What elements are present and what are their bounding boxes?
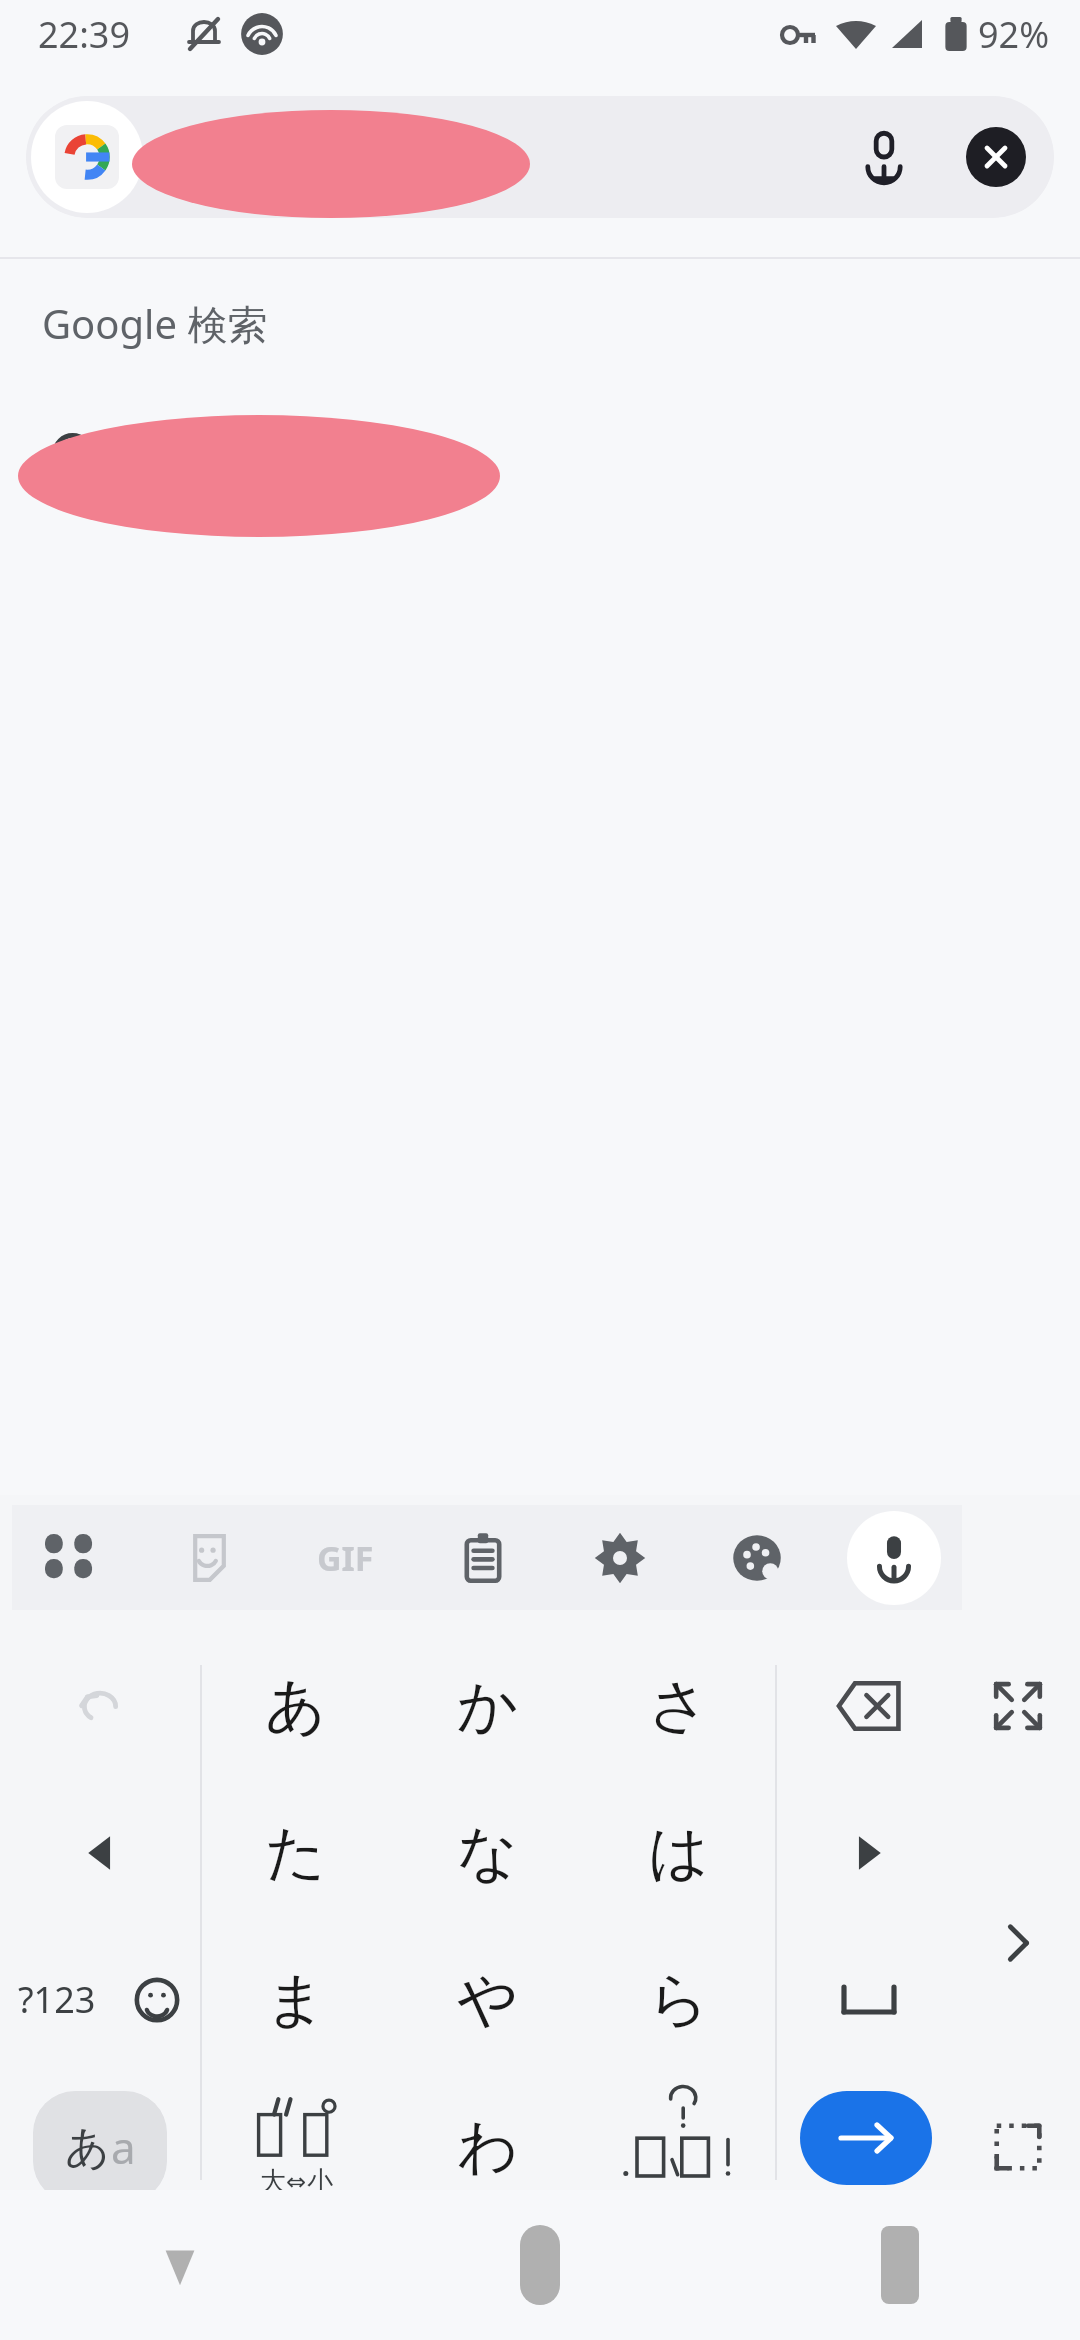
- button[interactable]: ら: [583, 1926, 775, 2073]
- button[interactable]: さ: [583, 1632, 775, 1779]
- button[interactable]: Home: [360, 2190, 720, 2340]
- staticText: な: [457, 1815, 519, 1891]
- staticText: Google 検索: [42, 296, 268, 351]
- button[interactable]: Stickers: [138, 1505, 276, 1610]
- button[interactable]: や: [392, 1926, 584, 2073]
- staticText: 小: [307, 2165, 333, 2198]
- staticText: ⇔: [286, 2168, 307, 2196]
- staticText: 鳥取蒼療整院: [201, 127, 489, 187]
- staticText: ?123: [18, 1975, 96, 2024]
- button[interactable]: Punctuation: [583, 2073, 775, 2220]
- staticText: 92%: [978, 10, 1050, 59]
- button[interactable]: あ: [200, 1632, 392, 1779]
- staticText: 22:39: [38, 10, 131, 59]
- staticText: ら: [648, 1962, 710, 2038]
- button[interactable]: Search engine: [31, 101, 143, 213]
- button[interactable]: Back: [0, 2190, 360, 2340]
- button[interactable]: GIF: [276, 1505, 414, 1610]
- staticText: あ: [265, 1668, 327, 1744]
- button[interactable]: Settings: [551, 1505, 688, 1610]
- button[interactable]: Clipboard: [414, 1505, 551, 1610]
- button[interactable]: Emoji: [114, 1926, 200, 2073]
- button[interactable]: ?123: [0, 1926, 114, 2073]
- button[interactable]: Search: [800, 2091, 932, 2185]
- button[interactable]: Switch input language: [0, 2073, 200, 2220]
- button[interactable]: か: [392, 1632, 584, 1779]
- staticText: あ: [65, 2120, 111, 2175]
- button[interactable]: More suggestions: [955, 1889, 1080, 1997]
- button[interactable]: Expand keyboard: [955, 1632, 1080, 1779]
- button[interactable]: Clear: [940, 101, 1052, 213]
- button[interactable]: Themes: [688, 1505, 825, 1610]
- button[interactable]: 鳥取蒼療整院: [0, 398, 1080, 520]
- button[interactable]: Cursor left: [0, 1779, 200, 1926]
- button[interactable]: Search engine: [26, 96, 1054, 218]
- staticText: か: [457, 1668, 519, 1744]
- staticText: は: [648, 1815, 710, 1891]
- staticText: や: [457, 1962, 519, 2038]
- button[interactable]: な: [392, 1779, 584, 1926]
- button[interactable]: Voice search: [828, 101, 940, 213]
- staticText: さ: [648, 1668, 710, 1744]
- button[interactable]: Keyboard layouts: [0, 1505, 138, 1610]
- button[interactable]: Cursor right: [783, 1779, 955, 1926]
- staticText: 大: [260, 2165, 286, 2198]
- button[interactable]: Select text: [955, 2073, 1080, 2220]
- button[interactable]: は: [583, 1779, 775, 1926]
- staticText: a: [111, 2117, 136, 2177]
- staticText: た: [265, 1815, 327, 1891]
- button[interactable]: Space: [783, 1926, 955, 2073]
- staticText: わ: [457, 2109, 519, 2185]
- button[interactable]: Dakuten and case: [200, 2073, 392, 2220]
- staticText: GIF: [317, 1535, 374, 1581]
- button[interactable]: Backspace: [783, 1632, 955, 1779]
- button[interactable]: た: [200, 1779, 392, 1926]
- staticText: ま: [265, 1962, 327, 2038]
- button[interactable]: Undo: [0, 1632, 200, 1779]
- button[interactable]: Voice input: [825, 1505, 962, 1610]
- button[interactable]: Recents: [720, 2190, 1080, 2340]
- button[interactable]: わ: [392, 2073, 584, 2220]
- button[interactable]: ま: [200, 1926, 392, 2073]
